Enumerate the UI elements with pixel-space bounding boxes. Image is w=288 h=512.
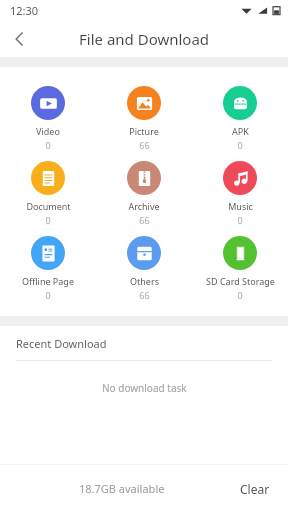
staticText: 0	[237, 139, 243, 151]
button[interactable]: Document	[0, 156, 96, 231]
staticText: 12:30	[10, 3, 39, 18]
button[interactable]: Music	[192, 156, 288, 231]
staticText: 66	[139, 139, 150, 151]
staticText: APK	[232, 125, 249, 137]
button[interactable]: SD Card Storage	[192, 231, 288, 306]
button[interactable]: Video	[0, 81, 96, 156]
staticText: Picture	[129, 125, 159, 137]
staticText: File and Download	[79, 29, 210, 49]
staticText: Music	[228, 200, 253, 212]
button[interactable]: Clear	[222, 465, 288, 512]
button[interactable]: APK	[192, 81, 288, 156]
staticText: No download task	[102, 381, 187, 395]
staticText: Document	[26, 200, 71, 212]
staticText: Clear	[240, 481, 270, 497]
button[interactable]: Offline Page	[0, 231, 96, 306]
staticText: 0	[45, 289, 51, 301]
button[interactable]: Others	[96, 231, 192, 306]
staticText: Archive	[128, 200, 160, 212]
staticText: 0	[45, 214, 51, 226]
button[interactable]: Archive	[96, 156, 192, 231]
staticText: Video	[36, 125, 60, 137]
staticText: Offline Page	[22, 275, 74, 287]
staticText: SD Card Storage	[206, 275, 275, 287]
staticText: 66	[139, 214, 150, 226]
staticText: Others	[130, 275, 159, 287]
staticText: Recent Download	[16, 336, 107, 351]
staticText: 18.7GB available	[79, 481, 165, 496]
staticText: 66	[139, 289, 150, 301]
staticText: 0	[237, 214, 243, 226]
button[interactable]: Picture	[96, 81, 192, 156]
button[interactable]: Back	[0, 20, 40, 57]
staticText: 0	[45, 139, 51, 151]
staticText: 0	[237, 289, 243, 301]
